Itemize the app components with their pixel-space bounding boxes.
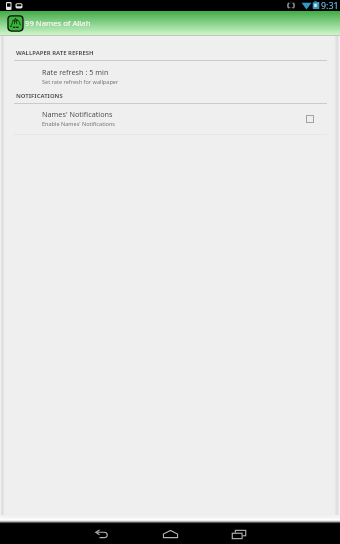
- staticText: Set rate refresh for wallpaper: [42, 78, 119, 86]
- staticText: Rate refresh : 5 min: [42, 67, 109, 77]
- staticText: 99 Names of Allah: [25, 18, 91, 28]
- button[interactable]: Home: [155, 524, 185, 544]
- staticText: WALLPAPER RATE REFRESH: [16, 49, 94, 57]
- staticText: 19:31: [316, 0, 339, 11]
- button[interactable]: Recent apps: [224, 524, 254, 544]
- staticText: NOTIFICATIONS: [16, 92, 63, 100]
- button[interactable]: Back: [86, 524, 116, 544]
- staticText: Names' Notifications: [42, 109, 113, 119]
- staticText: Enable Names' Notifications: [42, 120, 116, 128]
- button[interactable]: Names' Notifications: [0, 104, 340, 131]
- button[interactable]: Rate refresh : 5 min: [0, 61, 340, 87]
